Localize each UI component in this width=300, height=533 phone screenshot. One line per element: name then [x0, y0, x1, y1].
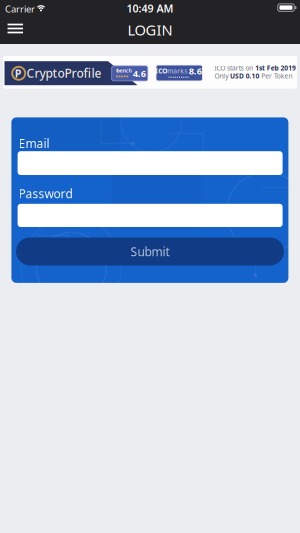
staticText: bench: [116, 67, 131, 74]
staticText: USD 0.10: [230, 72, 259, 80]
staticText: 4.6: [133, 67, 146, 80]
staticText: Submit: [130, 243, 169, 259]
staticText: ICO: [155, 66, 167, 75]
staticText: Email: [19, 135, 50, 151]
button[interactable]: [8, 24, 23, 33]
staticText: CryptoProfile: [26, 65, 101, 81]
button[interactable]: [18, 151, 283, 175]
button[interactable]: [18, 204, 283, 227]
staticText: ICO starts on: [214, 64, 255, 72]
staticText: 10:49 AM: [126, 1, 173, 15]
staticText: 8.6: [189, 65, 202, 77]
button[interactable]: Submit: [16, 237, 284, 265]
staticText: Carrier: [5, 3, 35, 15]
staticText: P: [15, 66, 22, 80]
staticText: Per Token: [259, 72, 292, 80]
staticText: LOGIN: [127, 20, 172, 40]
staticText: 1st Feb 2019: [255, 64, 296, 72]
button[interactable]: [3, 56, 297, 88]
staticText: Password: [19, 186, 73, 201]
staticText: marks: [167, 66, 187, 75]
staticText: Only: [214, 72, 230, 80]
